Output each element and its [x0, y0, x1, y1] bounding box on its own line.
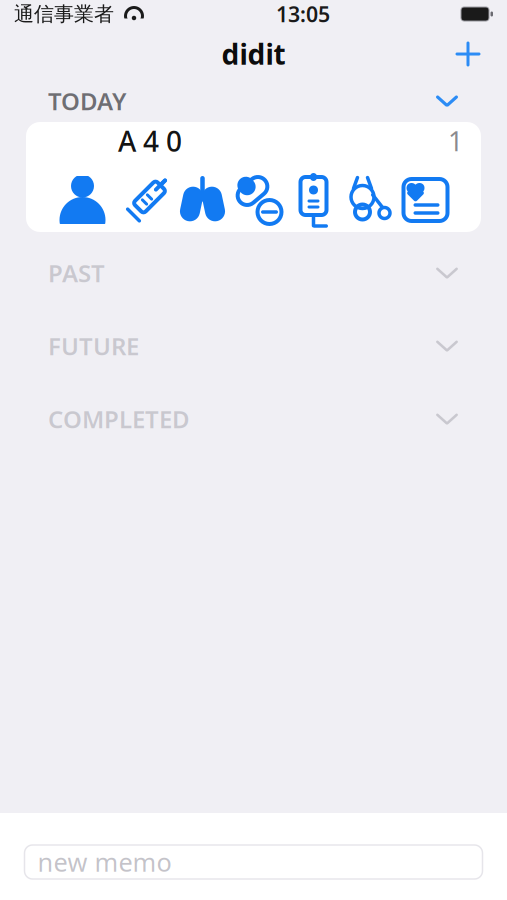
staticText: FUTURE [48, 330, 139, 362]
button[interactable]: Add [443, 29, 493, 79]
button[interactable]: COMPLETED [0, 404, 507, 434]
button[interactable]: A 4 0 [26, 122, 481, 232]
staticText: 通信事業者 [14, 2, 114, 26]
staticText: A 4 0 [118, 122, 182, 160]
staticText: TODAY [48, 85, 126, 117]
button[interactable]: PAST [0, 258, 507, 288]
button[interactable]: New memo [24, 845, 482, 879]
staticText: COMPLETED [48, 403, 190, 435]
staticText: 1 [448, 123, 463, 159]
staticText: new memo [37, 845, 171, 879]
staticText: 13:05 [276, 0, 330, 28]
staticText: PAST [48, 257, 105, 289]
button[interactable]: FUTURE [0, 331, 507, 361]
staticText: didit [221, 35, 285, 73]
button[interactable]: TODAY [0, 80, 507, 122]
